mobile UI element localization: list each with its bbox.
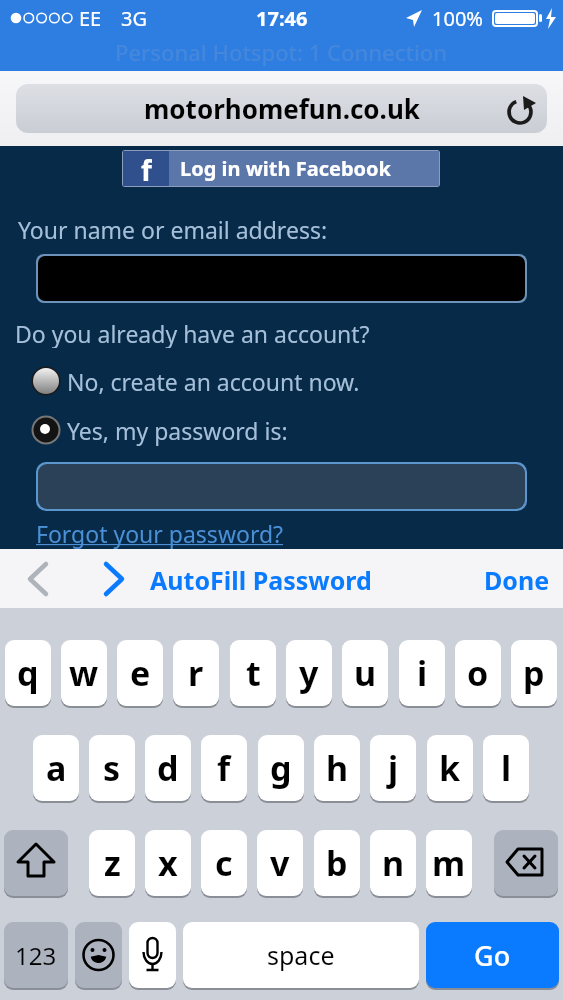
button[interactable] (36, 462, 527, 511)
staticText: j (388, 745, 399, 791)
button[interactable]: q (5, 640, 51, 706)
staticText: o (467, 650, 489, 696)
staticText: c (215, 840, 233, 886)
staticText: p (523, 650, 545, 696)
button[interactable]: s (89, 735, 135, 801)
button[interactable]: g (258, 735, 304, 801)
staticText: 123 (15, 939, 57, 972)
staticText: f (217, 745, 231, 791)
staticText: z (104, 840, 121, 886)
button[interactable] (129, 922, 176, 988)
staticText: r (188, 650, 204, 696)
button[interactable]: a (33, 735, 79, 801)
button[interactable]: o (455, 640, 501, 706)
staticText: n (382, 840, 405, 886)
button[interactable]: u (342, 640, 388, 706)
button[interactable]: Done (470, 563, 550, 597)
button[interactable]: f (122, 150, 440, 187)
button[interactable]: Go (426, 922, 559, 988)
staticText: Yes, my password is: (67, 415, 288, 446)
button[interactable]: z (89, 830, 135, 896)
staticText: a (46, 745, 67, 791)
staticText: l (501, 745, 512, 791)
staticText: w (69, 650, 99, 696)
button[interactable]: f (201, 735, 247, 801)
staticText: Do you already have an account? (15, 318, 370, 348)
button[interactable]: n (370, 830, 416, 896)
button[interactable]: x (145, 830, 191, 896)
staticText: No, create an account now. (67, 366, 360, 397)
staticText: h (326, 745, 349, 791)
staticText: Go (474, 937, 511, 974)
button[interactable]: r (173, 640, 219, 706)
button[interactable]: space (183, 922, 419, 988)
button[interactable] (22, 560, 58, 598)
staticText: x (158, 840, 178, 886)
button[interactable]: t (230, 640, 276, 706)
staticText: e (130, 650, 151, 696)
staticText: AutoFill Password (150, 563, 372, 597)
button[interactable]: motorhomefun.co.uk (16, 84, 547, 133)
button[interactable] (36, 254, 527, 303)
button[interactable] (75, 922, 122, 988)
staticText: u (354, 650, 377, 696)
button[interactable]: k (427, 735, 473, 801)
button[interactable]: m (426, 830, 472, 896)
staticText: k (439, 745, 461, 791)
staticText: f (141, 151, 152, 186)
staticText: s (103, 745, 121, 791)
staticText: motorhomefun.co.uk (144, 91, 420, 126)
button[interactable]: j (370, 735, 416, 801)
button[interactable]: AutoFill Password (150, 563, 450, 597)
staticText: Log in with Facebook (180, 155, 391, 182)
staticText: t (246, 650, 261, 696)
button[interactable] (30, 414, 360, 446)
staticText: 100% (432, 5, 483, 32)
button[interactable] (96, 560, 132, 598)
button[interactable]: p (511, 640, 557, 706)
button[interactable]: b (314, 830, 360, 896)
staticText: d (157, 745, 179, 791)
staticText: 3G (121, 5, 147, 32)
button[interactable]: h (314, 735, 360, 801)
staticText: Your name or email address: (18, 214, 328, 244)
button[interactable]: c (201, 830, 247, 896)
button[interactable]: d (145, 735, 191, 801)
staticText: 17:46 (256, 5, 308, 32)
button[interactable]: y (286, 640, 332, 706)
staticText: b (326, 840, 348, 886)
staticText: y (299, 650, 319, 696)
button[interactable]: w (61, 640, 107, 706)
staticText: Forgot your password? (36, 518, 284, 549)
button[interactable] (30, 365, 360, 397)
button[interactable]: i (399, 640, 445, 706)
staticText: space (267, 938, 335, 972)
staticText: v (270, 840, 290, 886)
button[interactable]: 123 (4, 922, 68, 988)
staticText: g (270, 745, 292, 791)
button[interactable]: v (257, 830, 303, 896)
staticText: i (417, 650, 428, 696)
button[interactable]: l (483, 735, 529, 801)
button[interactable] (504, 95, 538, 129)
staticText: q (17, 650, 39, 696)
staticText: Personal Hotspot: 1 Connection (115, 37, 448, 67)
staticText: Done (484, 563, 550, 597)
staticText: m (432, 840, 466, 886)
button[interactable]: Forgot your password? (36, 518, 296, 549)
button[interactable] (494, 830, 558, 896)
button[interactable]: e (117, 640, 163, 706)
staticText: EE (79, 5, 102, 32)
button[interactable] (4, 830, 68, 896)
